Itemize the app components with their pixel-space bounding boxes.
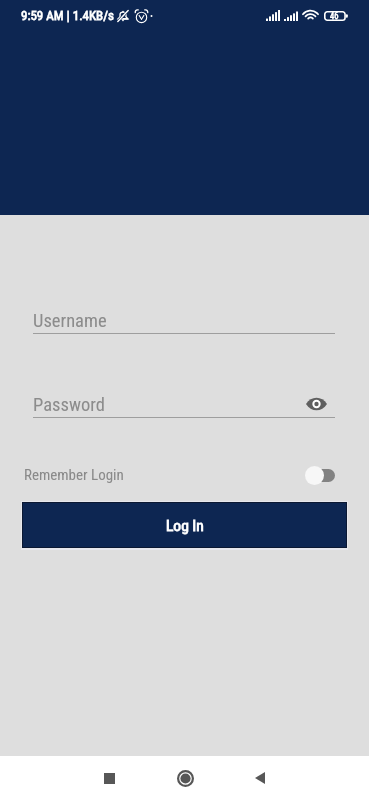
staticText: Password [33, 394, 105, 416]
button[interactable]: Username [33, 306, 335, 335]
button[interactable]: Home [147, 756, 223, 800]
button[interactable]: Remember Login toggle [305, 465, 335, 485]
staticText: 9:59 AM | 1.4KB/s [21, 8, 114, 23]
button[interactable]: Back [223, 756, 299, 800]
staticText: Remember Login [24, 466, 124, 484]
staticText: 46 [330, 11, 339, 21]
button[interactable]: Show password [304, 392, 328, 416]
button[interactable]: Log In [21, 501, 348, 550]
staticText: Username [33, 310, 107, 332]
button[interactable]: Recent apps [71, 756, 147, 800]
button[interactable]: Password [33, 390, 335, 419]
staticText: Log In [166, 517, 204, 535]
